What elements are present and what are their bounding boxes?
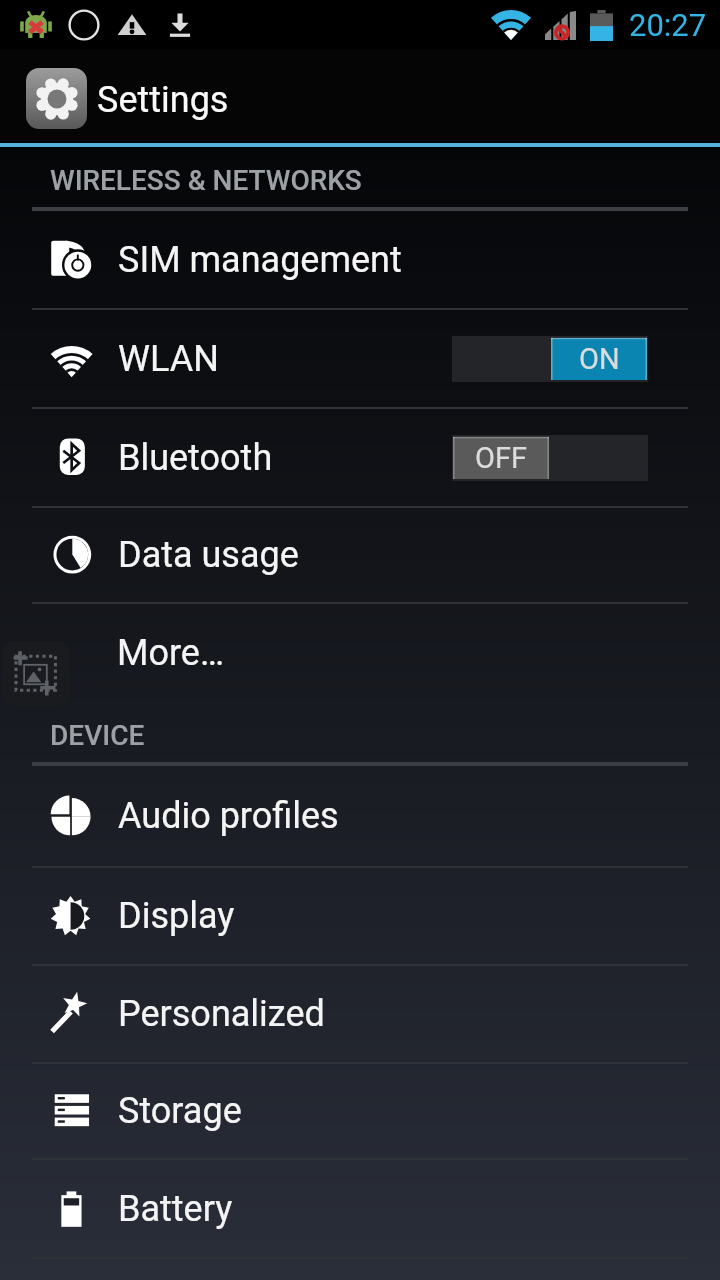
staticText: Audio profiles bbox=[118, 795, 339, 837]
staticText: More… bbox=[117, 632, 224, 674]
button[interactable]: Battery bbox=[0, 1160, 720, 1259]
staticText: Personalized bbox=[118, 993, 325, 1035]
staticText: Bluetooth bbox=[118, 437, 273, 479]
button[interactable]: Data usage bbox=[0, 508, 720, 604]
staticText: Display bbox=[118, 895, 235, 937]
button[interactable]: More… bbox=[0, 604, 720, 702]
staticText: ON bbox=[579, 342, 620, 376]
button[interactable]: Bluetooth bbox=[0, 409, 720, 508]
staticText: OFF bbox=[475, 441, 528, 475]
staticText: WIRELESS & NETWORKS bbox=[50, 164, 362, 197]
button[interactable]: OFF bbox=[452, 435, 648, 481]
button[interactable]: SIM management bbox=[0, 211, 720, 310]
staticText: Storage bbox=[118, 1090, 242, 1132]
staticText: Settings bbox=[97, 79, 229, 121]
button[interactable]: ON bbox=[452, 336, 648, 382]
button[interactable]: Storage bbox=[0, 1064, 720, 1160]
staticText: Data usage bbox=[118, 534, 299, 576]
button[interactable]: Display bbox=[0, 868, 720, 966]
button[interactable]: Personalized bbox=[0, 966, 720, 1064]
staticText: Battery bbox=[118, 1188, 233, 1230]
staticText: SIM management bbox=[118, 239, 402, 281]
button[interactable]: Settings bbox=[0, 50, 720, 143]
staticText: DEVICE bbox=[50, 719, 145, 752]
staticText: WLAN bbox=[118, 338, 219, 380]
button[interactable]: WLAN bbox=[0, 310, 720, 409]
button[interactable]: Audio profiles bbox=[0, 766, 720, 868]
staticText: 20:27 bbox=[629, 7, 707, 43]
